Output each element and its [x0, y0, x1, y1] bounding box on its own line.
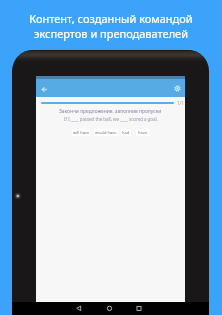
staticText: have	[138, 130, 148, 135]
button[interactable]: will have	[72, 129, 90, 136]
staticText: will have	[73, 130, 90, 135]
button[interactable]: would have	[94, 129, 118, 136]
staticText: had	[122, 130, 130, 135]
button[interactable]: had	[121, 129, 131, 136]
staticText: Контент, созданный командой	[29, 11, 193, 26]
staticText: Закончи предложение, заполнив пропуски	[59, 108, 162, 115]
button[interactable]: Settings	[172, 83, 183, 94]
staticText: If I ____ passed the ball, we ____ score…	[64, 116, 158, 122]
staticText: would have	[95, 130, 117, 135]
button[interactable]: Back	[39, 84, 50, 95]
staticText: экспертов и преподавателей	[34, 26, 188, 41]
button[interactable]: have	[136, 129, 150, 136]
staticText: 1/1	[177, 100, 184, 106]
